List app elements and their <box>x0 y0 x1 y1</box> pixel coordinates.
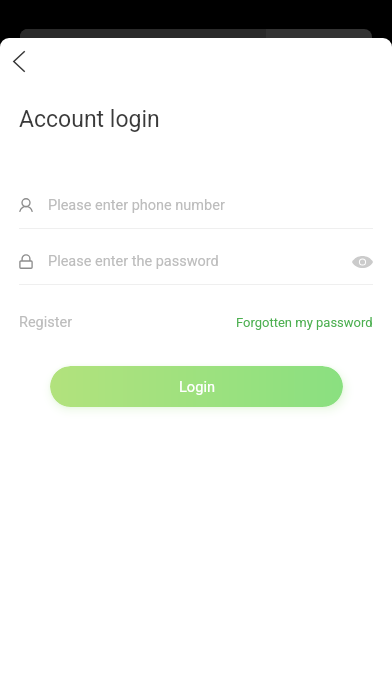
button[interactable]: Show password <box>351 250 373 272</box>
staticText: Forgotten my password <box>236 315 373 330</box>
button[interactable]: Forgotten my password <box>236 315 373 330</box>
button[interactable]: Login <box>50 366 343 407</box>
staticText: Please enter phone number <box>48 197 225 214</box>
button[interactable]: Register <box>19 314 73 331</box>
staticText: Please enter the password <box>48 253 219 270</box>
staticText: Login <box>179 378 215 395</box>
staticText: Account login <box>19 106 160 133</box>
staticText: Register <box>19 314 73 331</box>
button[interactable]: Back <box>0 42 38 80</box>
